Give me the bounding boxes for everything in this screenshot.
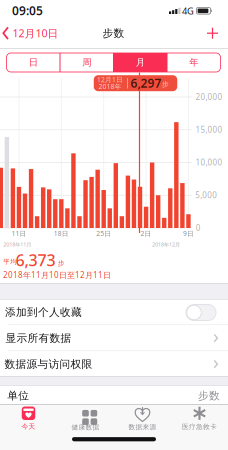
staticText: 显示所有数据 bbox=[5, 332, 71, 345]
staticText: 2日 bbox=[141, 229, 152, 238]
staticText: 健康数据 bbox=[71, 423, 99, 431]
staticText: 2018年12月 bbox=[152, 241, 180, 248]
staticText: 20,000 bbox=[195, 92, 222, 102]
button[interactable]: 周 bbox=[62, 53, 111, 72]
button[interactable]: 添加到个人收藏 bbox=[186, 304, 216, 320]
button[interactable]: 日 bbox=[8, 53, 58, 72]
staticText: 6,373 bbox=[15, 249, 55, 271]
staticText: 2018年 bbox=[98, 82, 121, 91]
button[interactable]: 数据源与访问权限 bbox=[0, 351, 228, 377]
staticText: 10,000 bbox=[195, 157, 222, 168]
button[interactable]: 年 bbox=[169, 53, 218, 72]
staticText: 周 bbox=[82, 57, 91, 68]
staticText: 步 bbox=[58, 259, 65, 267]
staticText: 25日 bbox=[96, 229, 111, 238]
staticText: 4G bbox=[182, 5, 194, 17]
button[interactable]: 显示所有数据 bbox=[0, 325, 228, 351]
button[interactable]: 健康数据 bbox=[57, 404, 113, 434]
staticText: 6,297 bbox=[130, 75, 161, 91]
button[interactable]: 单位 bbox=[0, 386, 228, 405]
staticText: 数据来源 bbox=[128, 423, 156, 431]
staticText: 月 bbox=[136, 57, 145, 68]
staticText: 年 bbox=[189, 57, 198, 68]
button[interactable]: 医疗急救卡 bbox=[171, 404, 227, 434]
button[interactable]: 12月10日 bbox=[2, 26, 59, 40]
staticText: 数据源与访问权限 bbox=[4, 358, 92, 371]
staticText: 15,000 bbox=[195, 124, 222, 135]
button[interactable]: 今天 bbox=[0, 404, 56, 434]
staticText: 12月10日 bbox=[13, 26, 59, 40]
staticText: 5,000 bbox=[195, 190, 217, 200]
button[interactable]: 月 bbox=[115, 53, 165, 72]
staticText: 步数 bbox=[198, 389, 220, 402]
staticText: 日 bbox=[29, 57, 38, 68]
staticText: 0 bbox=[196, 223, 201, 233]
staticText: 单位 bbox=[7, 389, 29, 402]
staticText: 11日 bbox=[11, 229, 26, 238]
staticText: 2018年11月 bbox=[3, 241, 31, 248]
staticText: 步数 bbox=[102, 27, 124, 40]
staticText: 09:05 bbox=[12, 2, 43, 18]
button[interactable]: 数据来源 bbox=[114, 404, 170, 434]
staticText: 今天 bbox=[21, 422, 35, 431]
staticText: 医疗急救卡 bbox=[182, 423, 217, 431]
staticText: 2018年11月10日至12月11日 bbox=[3, 270, 111, 280]
staticText: 添加到个人收藏 bbox=[5, 306, 82, 319]
staticText: 18日 bbox=[54, 229, 69, 238]
staticText: 步 bbox=[162, 80, 169, 88]
staticText: 平均 bbox=[3, 258, 17, 266]
staticText: 9日 bbox=[183, 229, 194, 238]
staticText: 12月1日 bbox=[97, 75, 123, 84]
button[interactable]: 添加数据 bbox=[207, 28, 218, 39]
